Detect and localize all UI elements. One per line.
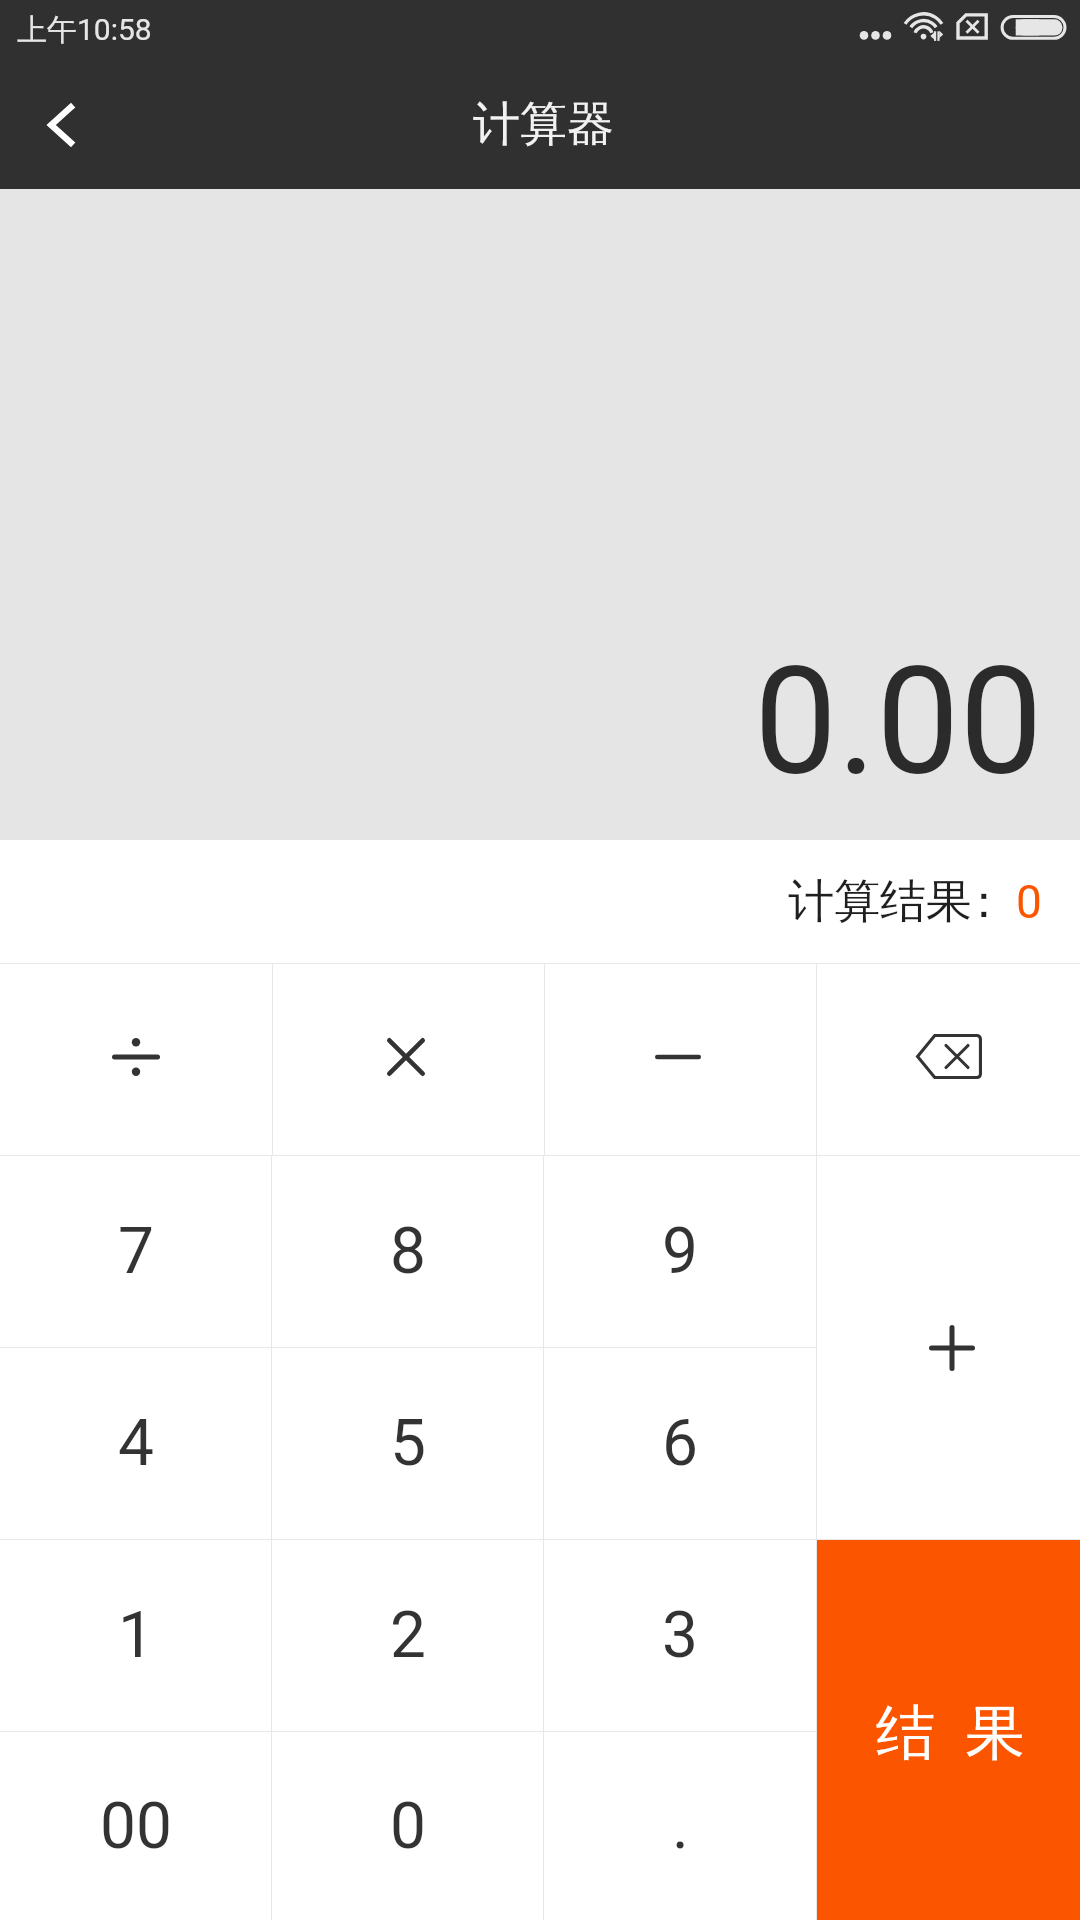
staticText: 计算器 <box>473 95 614 154</box>
button[interactable]: 5 <box>272 1348 543 1539</box>
staticText: 0 <box>1016 875 1042 929</box>
staticText: 计算结果 <box>788 873 972 931</box>
staticText: 6 <box>662 1406 698 1481</box>
staticText: 3 <box>662 1598 698 1673</box>
button[interactable]: 0 <box>272 1732 543 1920</box>
button[interactable]: 3 <box>544 1540 816 1731</box>
button[interactable]: . <box>544 1732 816 1920</box>
button[interactable]: 2 <box>272 1540 543 1731</box>
button[interactable]: 00 <box>0 1732 271 1920</box>
staticText: 2 <box>390 1598 426 1673</box>
button[interactable]: 6 <box>544 1348 816 1539</box>
button[interactable]: Minus <box>545 964 816 1155</box>
staticText: 00 <box>100 1789 172 1864</box>
button[interactable]: 9 <box>544 1156 816 1347</box>
button[interactable]: 1 <box>0 1540 271 1731</box>
button[interactable]: 8 <box>272 1156 543 1347</box>
staticText: 8 <box>390 1214 426 1289</box>
staticText: 上午10:58 <box>17 11 152 49</box>
staticText: 9 <box>662 1214 698 1289</box>
button[interactable]: 7 <box>0 1156 271 1347</box>
button[interactable]: 4 <box>0 1348 271 1539</box>
button[interactable]: Multiply <box>273 964 544 1155</box>
button[interactable]: Back <box>0 60 122 189</box>
button[interactable]: 结 果 <box>817 1540 1080 1920</box>
staticText: 7 <box>118 1214 154 1289</box>
button[interactable]: Divide <box>0 964 272 1155</box>
staticText: 4 <box>118 1406 154 1481</box>
button[interactable]: Backspace <box>817 964 1080 1155</box>
staticText: 结 果 <box>876 1690 1025 1771</box>
staticText: 0 <box>390 1789 426 1864</box>
button[interactable]: Plus <box>817 1156 1080 1539</box>
staticText: 5 <box>390 1406 426 1481</box>
staticText: 1 <box>118 1598 154 1673</box>
staticText: 0.00 <box>754 636 1043 809</box>
staticText: . <box>672 1789 689 1864</box>
staticText: ： <box>961 873 1007 931</box>
